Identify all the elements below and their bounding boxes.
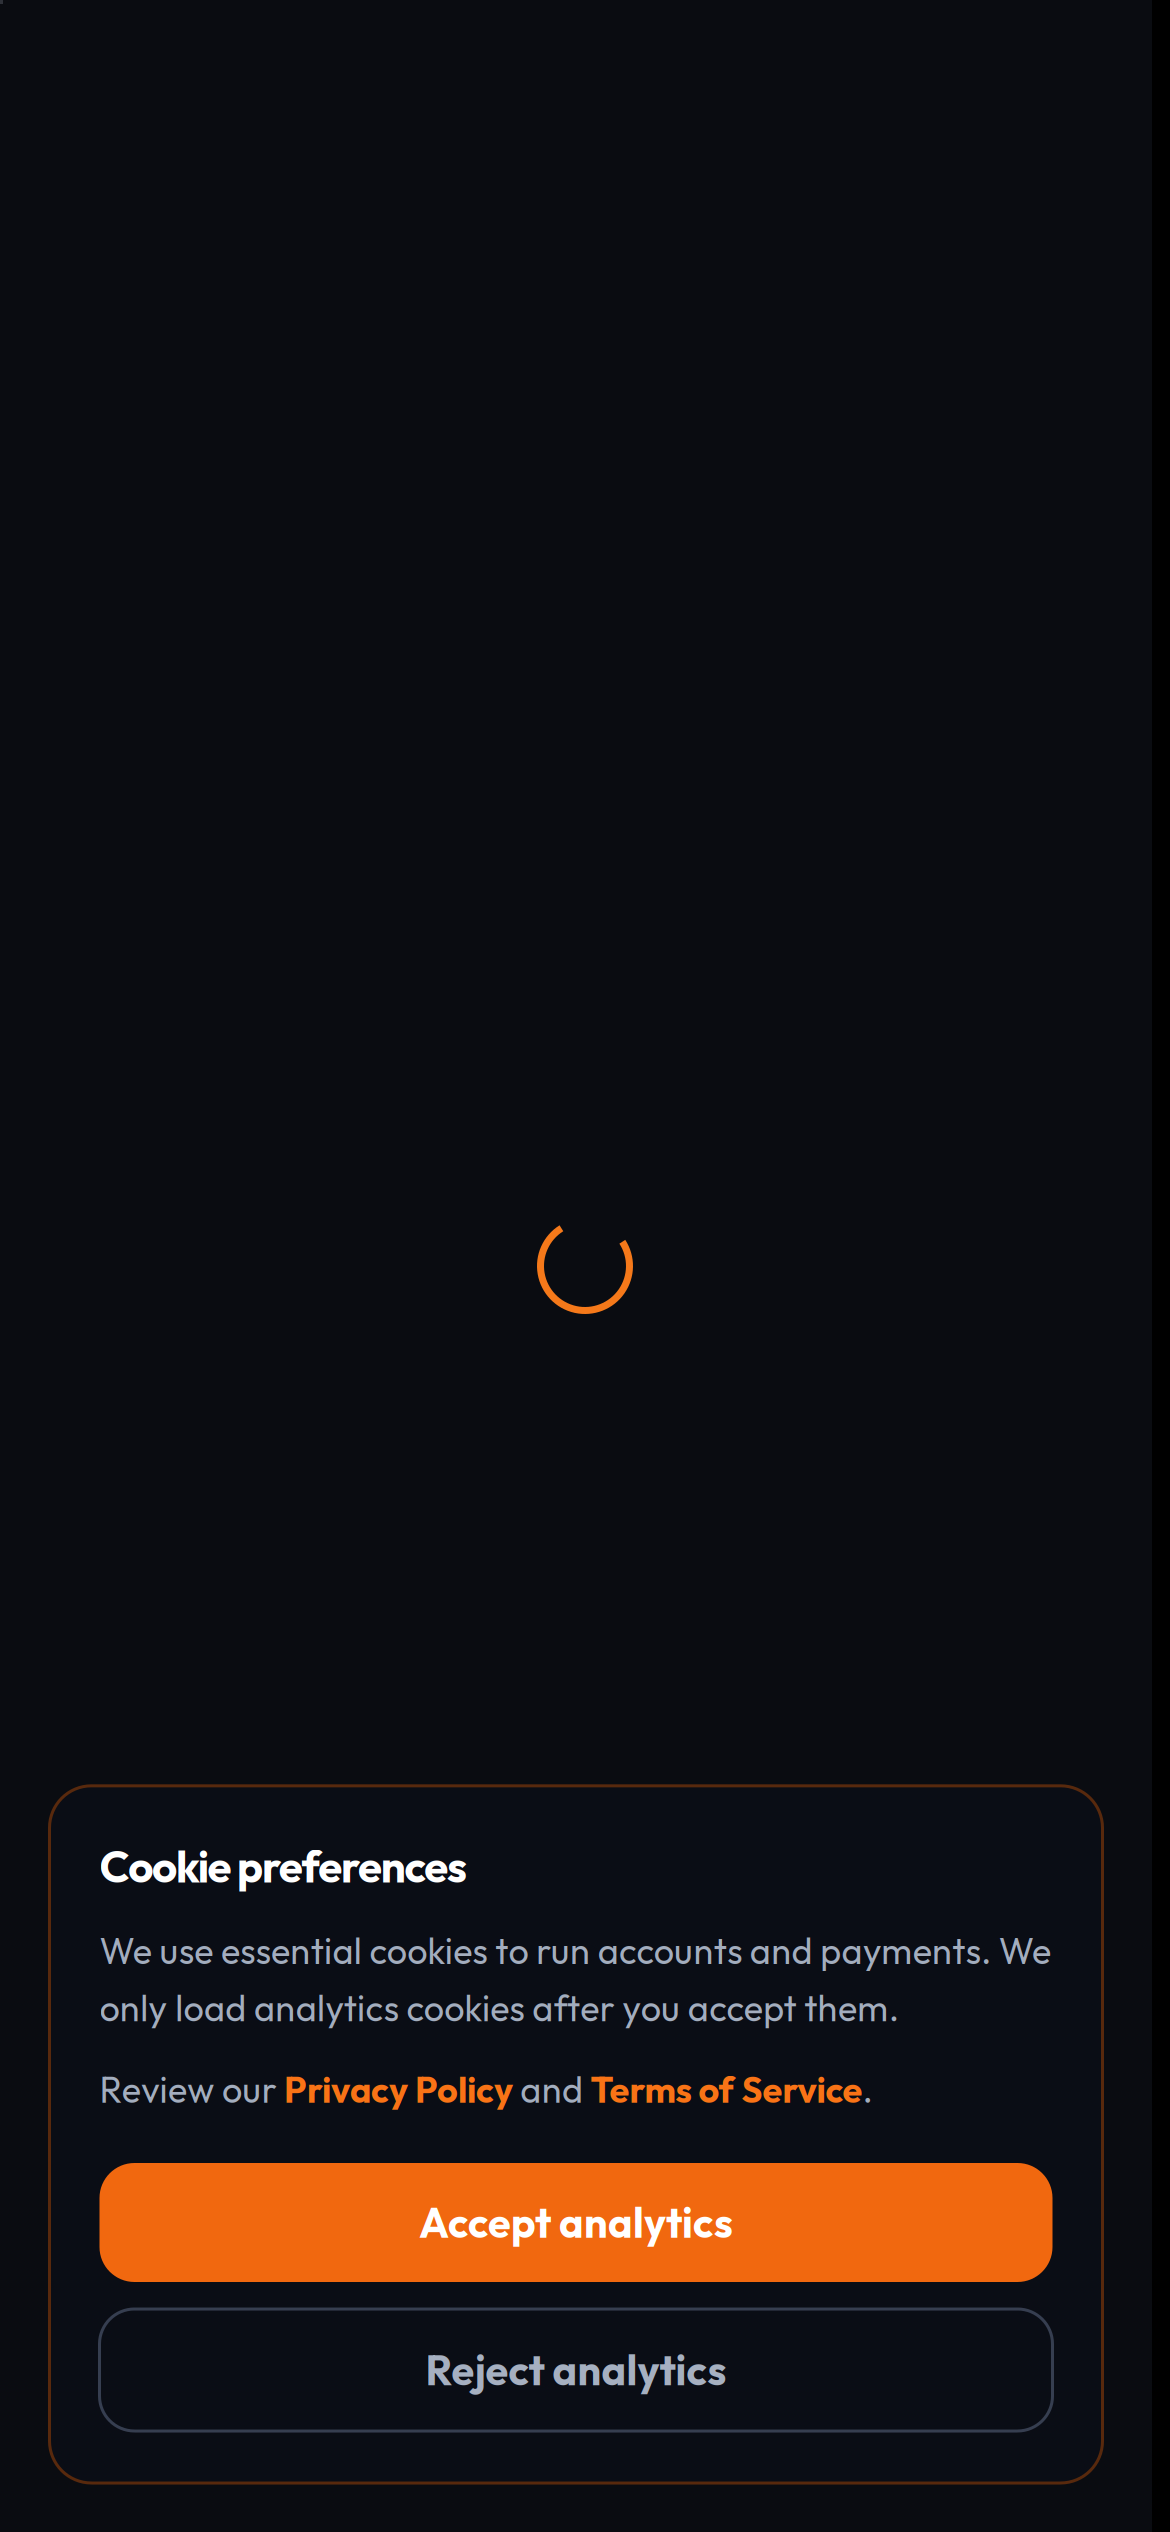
staticText: Privacy Policy (284, 2067, 513, 2112)
button[interactable]: Privacy Policy (284, 2067, 513, 2112)
staticText: and (513, 2067, 590, 2112)
staticText: We use essential cookies to run accounts… (99, 1928, 1051, 2031)
button[interactable]: Accept analytics (99, 2163, 1052, 2282)
staticText: Terms of Service (590, 2067, 862, 2112)
staticText: Accept analytics (419, 2196, 733, 2249)
staticText: Reject analytics (425, 2344, 726, 2396)
staticText: Review our (99, 2067, 284, 2112)
button[interactable]: Reject analytics (99, 2309, 1052, 2431)
staticText: Cookie preferences (99, 1839, 467, 1894)
button[interactable]: Terms of Service (590, 2067, 862, 2112)
staticText: . (862, 2067, 872, 2112)
